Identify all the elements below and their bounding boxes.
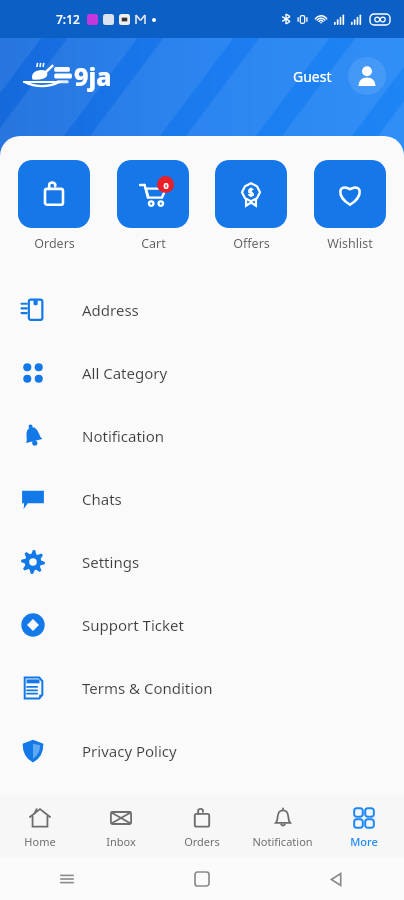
button[interactable]: Inbox xyxy=(80,800,161,855)
button[interactable]: Address xyxy=(0,278,404,341)
button[interactable]: Settings xyxy=(0,530,404,593)
staticText: Notification xyxy=(252,834,313,849)
staticText: Orders xyxy=(184,834,220,849)
staticText: Home xyxy=(24,834,56,849)
staticText: Orders xyxy=(34,235,75,252)
staticText: 7:12 xyxy=(56,11,80,27)
button[interactable]: Notification xyxy=(0,404,404,467)
button[interactable]: Offers xyxy=(215,160,287,252)
button[interactable]: More xyxy=(323,800,404,855)
staticText: Wishlist xyxy=(327,235,373,252)
staticText: Offers xyxy=(233,235,270,252)
staticText: 9ja xyxy=(74,59,112,93)
staticText: Cart xyxy=(141,235,166,252)
staticText: Privacy Policy xyxy=(82,741,177,761)
button[interactable]: Orders xyxy=(18,160,90,252)
button[interactable]: Guest xyxy=(289,63,336,90)
staticText: Terms & Condition xyxy=(82,678,213,698)
button[interactable]: Notification xyxy=(242,800,323,855)
button[interactable]: Home xyxy=(0,800,80,855)
button[interactable]: Account xyxy=(348,57,386,95)
button[interactable]: Chats xyxy=(0,467,404,530)
button[interactable]: All Category xyxy=(0,341,404,404)
button[interactable]: Privacy Policy xyxy=(0,719,404,782)
button[interactable]: Terms & Condition xyxy=(0,656,404,719)
staticText: Inbox xyxy=(106,834,136,849)
button[interactable]: Wishlist xyxy=(314,160,386,252)
staticText: All Category xyxy=(82,363,168,383)
button[interactable]: Support Ticket xyxy=(0,593,404,656)
staticText: Support Ticket xyxy=(82,615,184,635)
button[interactable]: 0 xyxy=(117,160,189,252)
staticText: More xyxy=(350,834,378,849)
staticText: Chats xyxy=(82,489,122,509)
staticText: Notification xyxy=(82,426,165,446)
staticText: 0 xyxy=(163,179,169,191)
button[interactable]: Orders xyxy=(161,800,242,855)
staticText: Settings xyxy=(82,552,140,572)
staticText: Guest xyxy=(293,67,332,86)
staticText: Address xyxy=(82,300,139,320)
